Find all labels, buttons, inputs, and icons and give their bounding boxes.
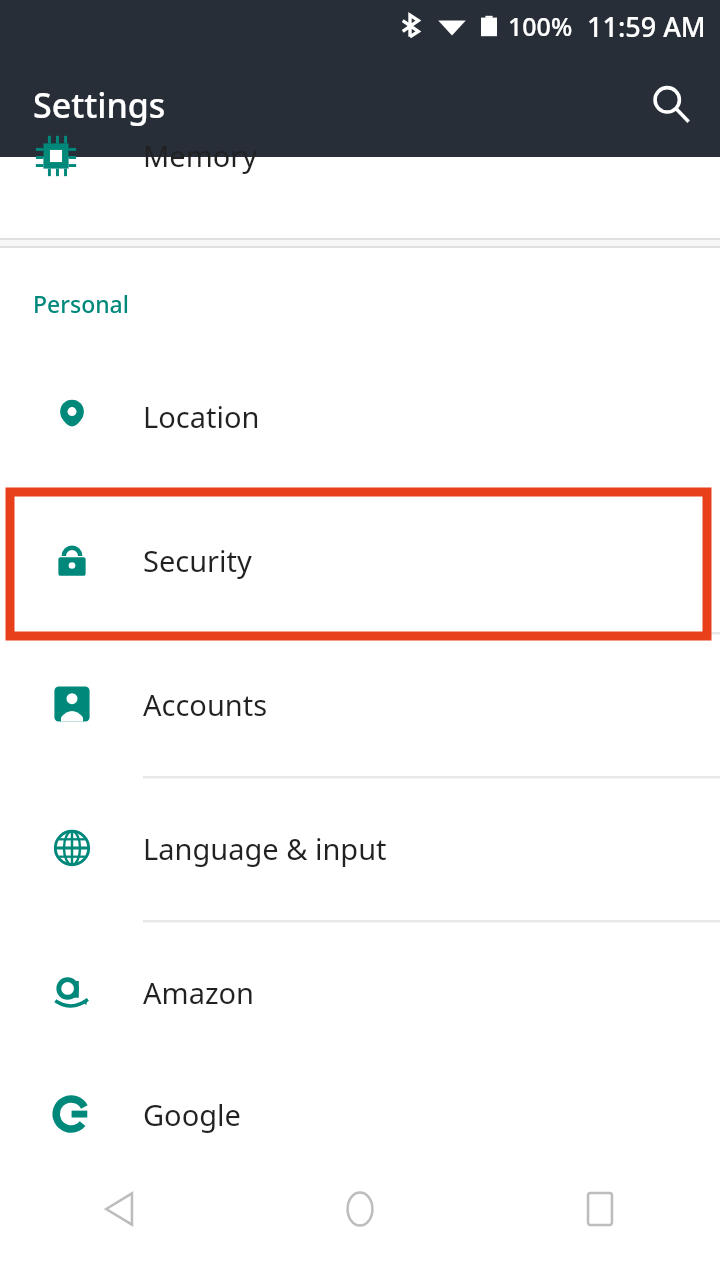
- staticText: Google: [143, 1095, 241, 1134]
- button[interactable]: Security: [0, 488, 720, 632]
- button[interactable]: Home: [240, 1164, 480, 1254]
- staticText: Amazon: [143, 973, 255, 1012]
- staticText: Location: [143, 397, 260, 436]
- button[interactable]: Language & input: [0, 776, 720, 920]
- button[interactable]: Location: [0, 344, 720, 488]
- staticText: Security: [143, 541, 252, 580]
- button[interactable]: Recents: [480, 1164, 720, 1254]
- staticText: Personal: [33, 288, 129, 319]
- button[interactable]: Search: [633, 66, 709, 142]
- staticText: Memory: [143, 136, 258, 175]
- staticText: 100%: [508, 9, 573, 43]
- staticText: Accounts: [143, 685, 268, 724]
- button[interactable]: Google: [0, 1064, 720, 1164]
- staticText: 11:59 AM: [587, 8, 706, 45]
- staticText: Settings: [33, 82, 166, 128]
- button[interactable]: Amazon: [0, 920, 720, 1064]
- staticText: Language & input: [143, 829, 387, 868]
- button[interactable]: Accounts: [0, 632, 720, 776]
- button[interactable]: Memory: [0, 157, 720, 238]
- button[interactable]: Back: [0, 1164, 240, 1254]
